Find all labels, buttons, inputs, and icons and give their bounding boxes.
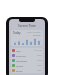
staticText: Screen Time: [18, 24, 36, 28]
staticText: Today: [13, 31, 21, 35]
button[interactable]: Phone: [11, 63, 43, 68]
staticText: Phone: [16, 64, 24, 67]
button[interactable]: Podcasts: [11, 53, 43, 58]
staticText: 3h 12m: [33, 34, 41, 37]
staticText: 35m: [37, 59, 42, 62]
staticText: Messages: [16, 59, 28, 62]
staticText: 14m: [37, 69, 42, 72]
staticText: Daily Average: [27, 31, 41, 34]
button[interactable]: Mail: [11, 48, 43, 53]
button[interactable]: Today: [11, 30, 43, 46]
staticText: 22m: [37, 64, 42, 67]
button[interactable]: Music: [11, 68, 43, 73]
staticText: Mail: [16, 49, 21, 52]
staticText: 1h 12m: [34, 49, 42, 52]
button[interactable]: Messages: [11, 58, 43, 63]
staticText: Podcasts: [16, 54, 27, 57]
staticText: 48m: [37, 54, 42, 57]
staticText: Music: [16, 69, 23, 72]
